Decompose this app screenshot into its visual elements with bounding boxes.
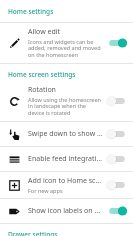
button[interactable]: Show icon labels on desktop (0, 199, 133, 223)
button[interactable]: Add icon to Home screen (0, 172, 133, 198)
button[interactable]: Off (107, 178, 127, 192)
staticText: Home settings (8, 7, 54, 16)
button[interactable]: Off (107, 152, 127, 166)
button[interactable]: On (107, 36, 127, 50)
staticText: Allow using the homescreen in landscape … (28, 96, 103, 117)
staticText: Add icon to Home screen (28, 176, 103, 186)
staticText: Icons and widgets can be added, removed … (28, 38, 103, 59)
staticText: Rotation (28, 85, 56, 95)
button[interactable]: Off (107, 127, 127, 141)
button[interactable]: Off (107, 94, 127, 108)
button[interactable]: Enable feed integration (0, 147, 133, 171)
button[interactable]: Swipe down to show notifications (0, 122, 133, 146)
staticText: Enable feed integration (28, 154, 103, 164)
button[interactable]: Allow edit (0, 23, 133, 63)
button[interactable]: Rotation (0, 81, 133, 121)
staticText: Home screen settings (8, 70, 76, 79)
staticText: Allow edit (28, 27, 61, 37)
staticText: Swipe down to show notific.. (28, 129, 103, 139)
staticText: Drawer settings (8, 230, 58, 236)
button[interactable]: On (107, 204, 127, 218)
staticText: Show icon labels on desktop (28, 206, 103, 216)
staticText: For new apps (28, 187, 63, 194)
